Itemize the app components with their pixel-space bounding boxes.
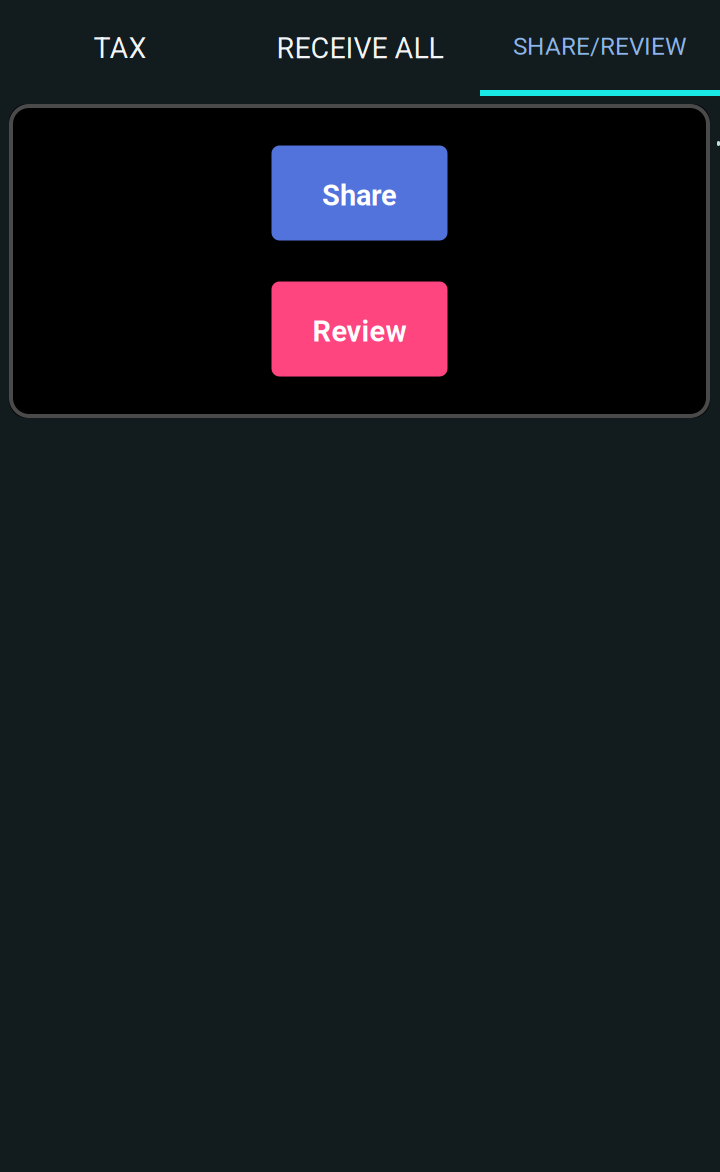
button[interactable]: Review [271,281,447,376]
staticText: SHARE/REVIEW [513,32,687,61]
button[interactable]: RECEIVE ALL [240,0,480,96]
staticText: Share [322,178,397,212]
button[interactable]: TAX [0,0,240,96]
button[interactable]: Share [271,145,447,240]
staticText: TAX [93,32,146,65]
staticText: RECEIVE ALL [276,32,443,65]
staticText: Review [312,314,406,348]
button[interactable]: SHARE/REVIEW [480,0,720,96]
